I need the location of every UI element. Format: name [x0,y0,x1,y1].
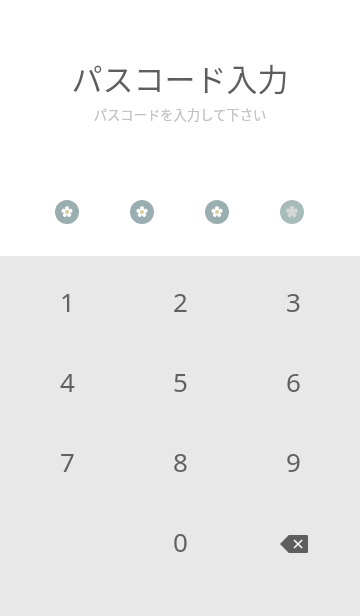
button[interactable]: 2 [124,261,237,341]
button[interactable]: Delete last digit [237,501,350,581]
staticText: 1 [60,284,75,319]
staticText: 8 [173,444,188,479]
button[interactable]: 7 [10,421,124,501]
button[interactable]: 0 [124,501,237,581]
staticText: 7 [60,444,75,479]
staticText: 0 [173,524,188,559]
staticText: 3 [286,284,301,319]
staticText: 5 [173,364,188,399]
button[interactable]: 6 [237,341,350,421]
button[interactable]: 1 [10,261,124,341]
button[interactable]: 5 [124,341,237,421]
button[interactable]: 9 [237,421,350,501]
button[interactable]: 8 [124,421,237,501]
staticText: パスコード入力 [0,55,360,100]
staticText: 4 [60,364,75,399]
staticText: 2 [173,284,188,319]
staticText: 9 [286,444,301,479]
staticText: 6 [286,364,301,399]
button[interactable]: 4 [10,341,124,421]
button[interactable]: 3 [237,261,350,341]
staticText: パスコードを入力して下さい [0,105,360,124]
